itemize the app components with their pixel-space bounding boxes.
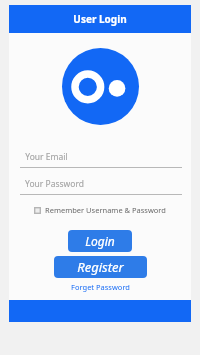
- button[interactable]: User Login: [9, 5, 191, 33]
- staticText: Your Password: [25, 178, 84, 190]
- staticText: Register: [77, 258, 124, 276]
- staticText: Your Email: [25, 151, 68, 163]
- other: App logo: [62, 48, 139, 125]
- button[interactable]: Forget Password: [66, 280, 135, 294]
- button[interactable]: Your Password: [20, 173, 182, 195]
- staticText: Login: [85, 233, 115, 249]
- button[interactable]: Remember Username & Password: [31, 203, 169, 217]
- button[interactable]: Login: [68, 230, 132, 252]
- staticText: User Login: [73, 12, 127, 26]
- staticText: Forget Password: [71, 282, 130, 292]
- staticText: Remember Username & Password: [45, 205, 166, 215]
- button[interactable]: Register: [54, 256, 147, 278]
- button[interactable]: Your Email: [20, 146, 182, 168]
